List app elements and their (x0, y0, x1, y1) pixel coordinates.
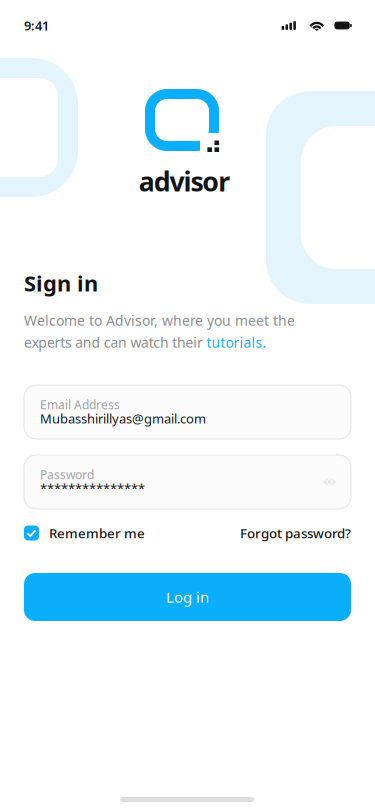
button[interactable]: Forgot password? (240, 524, 351, 542)
staticText: Remember me (49, 524, 145, 542)
staticText: Welcome to Advisor, where you meet the (24, 311, 295, 330)
staticText: Sign in (24, 268, 98, 298)
staticText: tutorials. (207, 333, 267, 352)
button[interactable]: tutorials. (207, 333, 267, 352)
staticText: Password (40, 466, 94, 483)
staticText: experts and can watch their (24, 333, 207, 352)
staticText: Forgot password? (240, 524, 351, 542)
staticText: Mubasshirillyas@gmail.com (40, 410, 206, 427)
staticText: 9:41 (24, 17, 49, 34)
staticText: Email Address (40, 396, 120, 413)
staticText: advisor (139, 163, 230, 199)
button[interactable]: Log in (24, 573, 351, 621)
button[interactable]: Remember me (24, 524, 145, 542)
staticText: Log in (166, 587, 209, 607)
staticText: *************** (40, 480, 145, 497)
